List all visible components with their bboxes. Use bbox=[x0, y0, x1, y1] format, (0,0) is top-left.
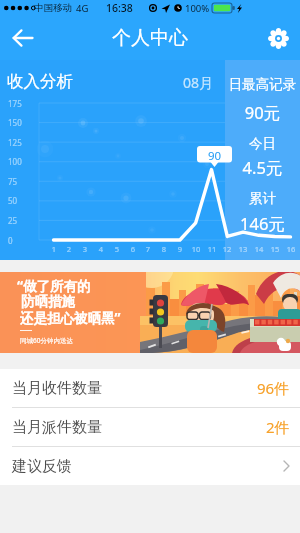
staticText: 收入分析 bbox=[7, 71, 73, 92]
staticText: 6 bbox=[125, 244, 141, 254]
button[interactable]: 建议反馈 bbox=[0, 447, 300, 485]
staticText: 4 bbox=[93, 244, 109, 254]
staticText: “做了所有的 bbox=[17, 277, 91, 295]
staticText: 4G bbox=[76, 2, 89, 15]
staticText: 还是担心被晒黑” bbox=[20, 309, 121, 327]
button[interactable]: Back bbox=[0, 16, 44, 60]
staticText: 8 bbox=[156, 244, 172, 254]
staticText: 175 bbox=[8, 98, 22, 109]
button[interactable]: 当月收件数量 bbox=[0, 369, 300, 407]
staticText: 96件 bbox=[257, 378, 290, 398]
staticText: 16 bbox=[283, 244, 299, 254]
staticText: 100% bbox=[185, 2, 210, 15]
staticText: 9 bbox=[172, 244, 188, 254]
staticText: 日最高记录 bbox=[225, 76, 300, 93]
staticText: 当月收件数量 bbox=[12, 379, 102, 398]
staticText: 个人中心 bbox=[112, 26, 188, 50]
staticText: 150 bbox=[8, 117, 22, 128]
staticText: 16:38 bbox=[106, 1, 133, 15]
staticText: 10 bbox=[188, 244, 204, 254]
staticText: 0 bbox=[8, 235, 13, 246]
staticText: 今日 bbox=[225, 135, 300, 152]
staticText: 5 bbox=[109, 244, 125, 254]
staticText: 建议反馈 bbox=[12, 457, 72, 476]
staticText: 同城60分钟内送达 bbox=[20, 336, 73, 345]
staticText: 12 bbox=[219, 244, 235, 254]
staticText: 75 bbox=[8, 176, 18, 187]
staticText: 7 bbox=[140, 244, 156, 254]
staticText: 中国移动 bbox=[34, 2, 72, 14]
button[interactable]: 当月派件数量 bbox=[0, 408, 300, 446]
button[interactable]: Settings bbox=[256, 16, 300, 60]
staticText: 90元 bbox=[225, 101, 300, 124]
staticText: 100 bbox=[8, 156, 22, 167]
staticText: 08月 bbox=[183, 73, 214, 92]
staticText: 146元 bbox=[225, 212, 300, 235]
staticText: 2件 bbox=[266, 417, 290, 437]
staticText: 13 bbox=[235, 244, 251, 254]
staticText: 11 bbox=[204, 244, 220, 254]
staticText: 当月派件数量 bbox=[12, 418, 102, 437]
staticText: 50 bbox=[8, 195, 18, 206]
staticText: 25 bbox=[8, 215, 18, 226]
staticText: 4.5元 bbox=[225, 156, 300, 179]
staticText: 14 bbox=[251, 244, 267, 254]
staticText: 2 bbox=[61, 244, 77, 254]
staticText: 防晒措施 bbox=[21, 293, 75, 310]
staticText: 15 bbox=[267, 244, 283, 254]
button[interactable]: “做了所有的 bbox=[0, 272, 300, 353]
staticText: 90 bbox=[197, 148, 232, 164]
staticText: 1 bbox=[46, 244, 62, 254]
staticText: 累计 bbox=[225, 190, 300, 207]
staticText: 125 bbox=[8, 137, 22, 148]
staticText: 3 bbox=[77, 244, 93, 254]
